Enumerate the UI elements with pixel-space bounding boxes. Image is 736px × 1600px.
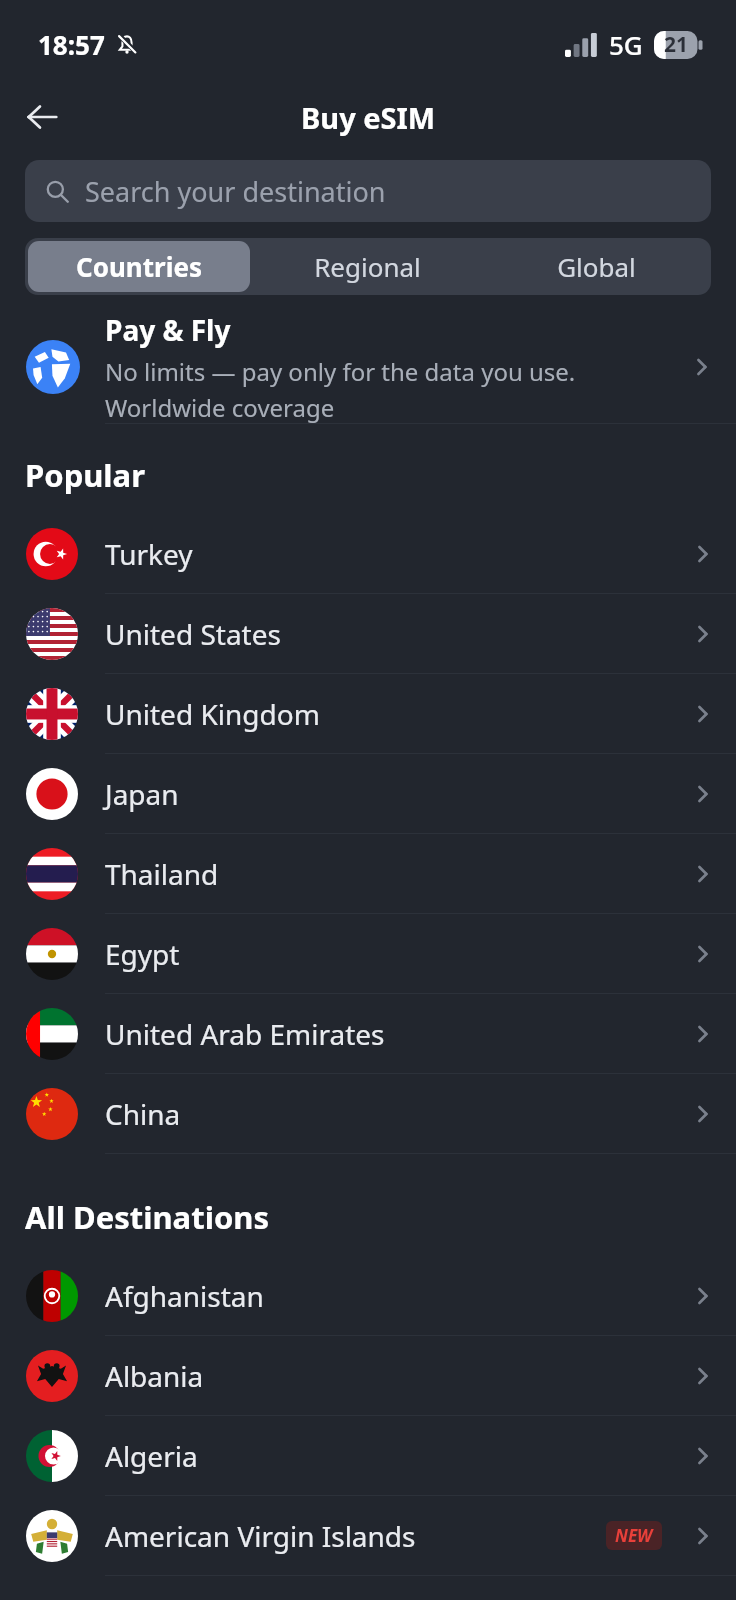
staticText: Afghanistan [105, 1277, 668, 1315]
button[interactable]: Albania [0, 1336, 736, 1415]
button[interactable]: Regional [256, 241, 479, 292]
staticText: Pay & Fly [105, 311, 231, 349]
staticText: China [105, 1095, 668, 1133]
staticText: No limits — pay only for the data you us… [105, 355, 576, 388]
button[interactable]: Turkey [0, 514, 736, 593]
button[interactable]: Afghanistan [0, 1256, 736, 1335]
staticText: 18:57 [38, 27, 105, 62]
staticText: Global [557, 249, 636, 284]
staticText: Popular [25, 454, 146, 496]
button[interactable]: Countries [28, 241, 250, 292]
button[interactable]: China [0, 1074, 736, 1153]
staticText: Thailand [105, 855, 668, 893]
button[interactable]: Pay & Fly [0, 311, 736, 423]
staticText: Algeria [105, 1437, 668, 1475]
button[interactable]: United Arab Emirates [0, 994, 736, 1073]
staticText: Countries [76, 249, 202, 284]
staticText: Worldwide coverage [105, 391, 335, 423]
staticText: Egypt [105, 935, 668, 973]
staticText: Search your destination [85, 173, 386, 210]
staticText: Buy eSIM [301, 98, 436, 137]
staticText: United Kingdom [105, 695, 668, 733]
staticText: Regional [314, 249, 421, 284]
staticText: Albania [105, 1357, 668, 1395]
button[interactable]: Japan [0, 754, 736, 833]
button[interactable]: United Kingdom [0, 674, 736, 753]
button[interactable]: American Virgin Islands [0, 1496, 736, 1575]
button[interactable]: United States [0, 594, 736, 673]
staticText: Turkey [105, 535, 668, 573]
staticText: NEW [615, 1524, 653, 1547]
staticText: United States [105, 615, 668, 653]
staticText: Japan [105, 775, 668, 813]
staticText: American Virgin Islands [105, 1517, 606, 1555]
button[interactable]: Global [485, 241, 708, 292]
staticText: 5G [609, 27, 643, 62]
staticText: United Arab Emirates [105, 1015, 668, 1053]
button[interactable]: Back [14, 89, 70, 145]
button[interactable]: Search your destination [25, 160, 711, 222]
button[interactable]: Algeria [0, 1416, 736, 1495]
button[interactable]: Egypt [0, 914, 736, 993]
button[interactable]: Thailand [0, 834, 736, 913]
staticText: 21 [664, 30, 689, 59]
staticText: All Destinations [25, 1196, 270, 1238]
